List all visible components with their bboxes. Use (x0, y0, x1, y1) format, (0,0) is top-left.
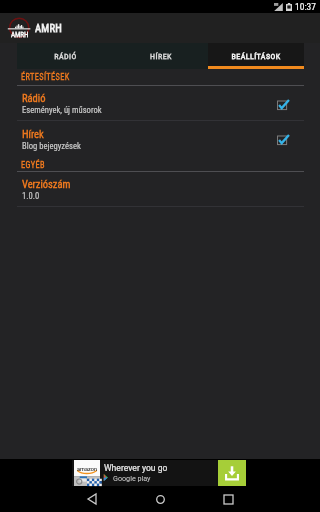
button[interactable]: Toggle (276, 97, 290, 111)
button[interactable]: HÍREK (113, 43, 208, 69)
button[interactable]: Install (218, 460, 246, 486)
button[interactable]: Back (77, 486, 107, 512)
staticText: Blog bejegyzések (22, 141, 81, 151)
button[interactable]: Hírek (0, 121, 320, 157)
staticText: Események, új műsorok (22, 105, 102, 115)
staticText: BEÁLLÍTÁSOK (231, 52, 281, 61)
staticText: Rádió (22, 92, 46, 104)
staticText: ÉRTESÍTÉSEK (21, 72, 70, 82)
staticText: RÁDIÓ (54, 52, 77, 61)
button[interactable]: Verziószám (0, 172, 320, 207)
staticText: AMRH (35, 22, 62, 34)
button[interactable]: Rádió (0, 86, 320, 121)
button[interactable]: BEÁLLÍTÁSOK (208, 43, 304, 69)
button[interactable]: Recents (213, 486, 243, 512)
staticText: EGYÉB (21, 160, 46, 170)
staticText: AMRH (11, 30, 29, 38)
staticText: Google play (113, 474, 151, 482)
staticText: amazon (77, 466, 98, 473)
staticText: Wherever you go (104, 463, 168, 473)
staticText: 10:37 (295, 1, 316, 12)
staticText: HÍREK (150, 52, 172, 61)
staticText: Verziószám (22, 178, 71, 190)
button[interactable]: Home (145, 486, 175, 512)
button[interactable]: amazon (72, 460, 246, 486)
button[interactable]: Toggle (276, 132, 290, 146)
staticText: 1.0.0 (22, 191, 40, 201)
button[interactable]: RÁDIÓ (17, 43, 113, 69)
staticText: Hírek (22, 128, 44, 140)
